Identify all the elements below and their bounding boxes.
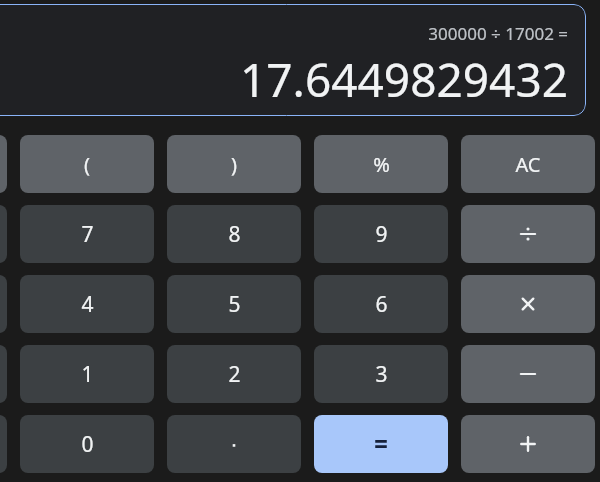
staticText: 8 xyxy=(228,220,241,249)
button[interactable]: AC xyxy=(461,135,595,193)
button[interactable]: Key xyxy=(0,205,7,263)
button[interactable]: 5 xyxy=(167,275,301,333)
staticText: % xyxy=(373,151,390,178)
button[interactable]: 9 xyxy=(314,205,448,263)
button[interactable]: Key xyxy=(0,275,7,333)
button[interactable]: 8 xyxy=(167,205,301,263)
staticText: 2 xyxy=(228,360,241,389)
button[interactable]: ( xyxy=(20,135,154,193)
button[interactable]: 4 xyxy=(20,275,154,333)
button[interactable]: % xyxy=(314,135,448,193)
button[interactable]: Key xyxy=(0,345,7,403)
staticText: ( xyxy=(84,151,90,178)
button[interactable]: 300000 ÷ 17002 = xyxy=(0,4,586,116)
button[interactable]: Key xyxy=(0,415,7,473)
button[interactable]: 7 xyxy=(20,205,154,263)
button[interactable]: 6 xyxy=(314,275,448,333)
staticText: 7 xyxy=(81,220,94,249)
staticText: 0 xyxy=(81,430,94,459)
button[interactable]: Backspace xyxy=(0,135,7,193)
staticText: AC xyxy=(515,151,541,178)
staticText: 9 xyxy=(375,220,388,249)
button[interactable]: Decimal point xyxy=(167,415,301,473)
button[interactable]: Subtract xyxy=(461,345,595,403)
staticText: 3 xyxy=(375,360,388,389)
button[interactable]: 2 xyxy=(167,345,301,403)
button[interactable]: Equals xyxy=(314,415,448,473)
staticText: 5 xyxy=(228,290,241,319)
staticText: ) xyxy=(231,151,237,178)
staticText: 4 xyxy=(81,290,94,319)
button[interactable]: Add xyxy=(461,415,595,473)
button[interactable]: 0 xyxy=(20,415,154,473)
staticText: 300000 ÷ 17002 = xyxy=(428,22,568,45)
button[interactable]: 3 xyxy=(314,345,448,403)
button[interactable]: Divide xyxy=(461,205,595,263)
button[interactable]: ) xyxy=(167,135,301,193)
button[interactable]: Multiply xyxy=(461,275,595,333)
staticText: 6 xyxy=(375,290,388,319)
button[interactable]: 1 xyxy=(20,345,154,403)
staticText: 1 xyxy=(81,360,94,389)
staticText: 17.6449829432 xyxy=(239,48,568,111)
